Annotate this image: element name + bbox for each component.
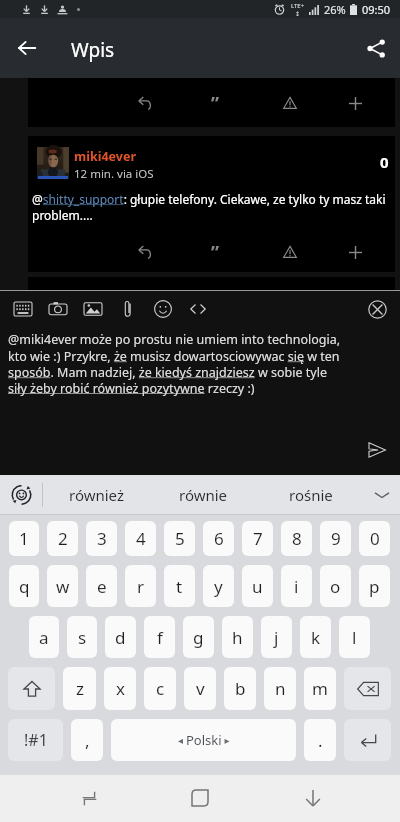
button[interactable]: Shift xyxy=(8,667,55,710)
button[interactable]: Space xyxy=(111,719,296,761)
button[interactable]: Share xyxy=(358,30,394,66)
staticText: 9 xyxy=(331,527,341,550)
button[interactable]: e xyxy=(86,565,117,607)
button[interactable]: k xyxy=(300,616,331,658)
button[interactable]: w xyxy=(47,565,78,607)
staticText: e xyxy=(97,575,107,598)
button[interactable]: Hide keyboard xyxy=(289,774,337,822)
button[interactable]: rośnie xyxy=(257,475,364,514)
button[interactable]: 3 xyxy=(86,521,117,556)
staticText: ↕ xyxy=(295,10,301,17)
button[interactable]: Backspace xyxy=(344,667,391,710)
button[interactable]: Close xyxy=(362,294,392,324)
button[interactable]: l xyxy=(339,616,370,658)
button[interactable]: Attach xyxy=(110,293,145,325)
button[interactable]: d xyxy=(105,616,136,658)
staticText: 09:50 xyxy=(362,2,391,17)
button[interactable]: h xyxy=(222,616,253,658)
button[interactable]: j xyxy=(261,616,292,658)
button[interactable]: Home xyxy=(176,774,224,822)
button[interactable]: 8 xyxy=(281,521,312,556)
button[interactable]: 6 xyxy=(203,521,234,556)
staticText: 0 xyxy=(380,152,389,172)
button[interactable]: Gallery xyxy=(75,293,110,325)
button[interactable]: 7 xyxy=(242,521,273,556)
button[interactable]: c xyxy=(144,667,176,710)
button[interactable]: , xyxy=(71,719,103,761)
staticText: Polski xyxy=(186,731,222,749)
staticText: @shitty_support: głupie telefony. Ciekaw… xyxy=(32,191,392,223)
button[interactable]: z xyxy=(63,667,96,710)
button[interactable]: Emoji xyxy=(145,293,180,325)
button[interactable]: Code xyxy=(180,293,215,325)
staticText: d xyxy=(115,626,126,649)
staticText: . xyxy=(318,729,323,752)
button[interactable]: f xyxy=(144,616,175,658)
button[interactable]: t xyxy=(164,565,195,607)
button[interactable]: równie xyxy=(150,475,257,514)
button[interactable]: Recents xyxy=(65,774,113,822)
staticText: równie xyxy=(179,485,228,505)
button[interactable]: 9 xyxy=(320,521,351,556)
staticText: n xyxy=(275,677,286,700)
button[interactable]: Expand xyxy=(364,475,400,514)
button[interactable]: a xyxy=(29,616,59,658)
button[interactable]: q xyxy=(9,565,39,607)
staticText: y xyxy=(214,575,223,598)
staticText: Wpis xyxy=(71,37,115,63)
button[interactable]: Back xyxy=(9,30,45,66)
staticText: x xyxy=(116,677,125,700)
button[interactable]: y xyxy=(203,565,234,607)
button[interactable]: m xyxy=(304,667,336,710)
button[interactable]: 5 xyxy=(164,521,195,556)
button[interactable]: b xyxy=(224,667,256,710)
button[interactable]: i xyxy=(281,565,312,607)
staticText: k xyxy=(311,626,321,649)
button[interactable]: Quote xyxy=(202,239,228,265)
staticText: c xyxy=(156,677,165,700)
button[interactable]: Enter xyxy=(344,719,391,761)
staticText: 5 xyxy=(175,527,185,550)
staticText: rośnie xyxy=(289,485,333,505)
button[interactable]: s xyxy=(67,616,97,658)
button[interactable]: 1 xyxy=(9,521,39,556)
button[interactable]: !#1 xyxy=(8,719,63,761)
button[interactable]: Camera xyxy=(40,293,75,325)
button[interactable]: Emoji xyxy=(0,475,42,514)
button[interactable]: Reply xyxy=(132,239,158,265)
button[interactable]: o xyxy=(320,565,351,607)
staticText: i xyxy=(294,575,299,598)
staticText: o xyxy=(330,575,341,598)
button[interactable]: 2 xyxy=(47,521,78,556)
staticText: ▸ xyxy=(222,733,230,747)
staticText: w xyxy=(56,575,70,598)
button[interactable]: g xyxy=(183,616,214,658)
button[interactable]: u xyxy=(242,565,273,607)
button[interactable]: Reply xyxy=(132,90,158,116)
button[interactable]: 0 xyxy=(359,521,390,556)
staticText: ◂ xyxy=(178,733,186,747)
button[interactable]: x xyxy=(104,667,136,710)
staticText: miki4ever xyxy=(74,148,136,165)
button[interactable]: v xyxy=(184,667,216,710)
button[interactable]: Report xyxy=(277,239,303,265)
staticText: 2 xyxy=(58,527,68,550)
staticText: j xyxy=(274,626,279,649)
button[interactable]: Keyboard xyxy=(5,293,40,325)
staticText: b xyxy=(235,677,246,700)
staticText: , xyxy=(85,729,90,752)
button[interactable]: 4 xyxy=(125,521,156,556)
button[interactable]: również xyxy=(43,475,150,514)
button[interactable]: r xyxy=(125,565,156,607)
button[interactable]: More xyxy=(342,239,368,265)
button[interactable]: Quote xyxy=(202,90,228,116)
button[interactable]: n xyxy=(264,667,296,710)
staticText: również xyxy=(69,485,124,505)
button[interactable]: . xyxy=(304,719,336,761)
staticText: 8 xyxy=(292,527,302,550)
button[interactable]: Report xyxy=(277,90,303,116)
staticText: g xyxy=(193,626,204,649)
button[interactable]: More xyxy=(342,90,368,116)
button[interactable]: Send xyxy=(362,435,392,465)
button[interactable]: p xyxy=(359,565,390,607)
